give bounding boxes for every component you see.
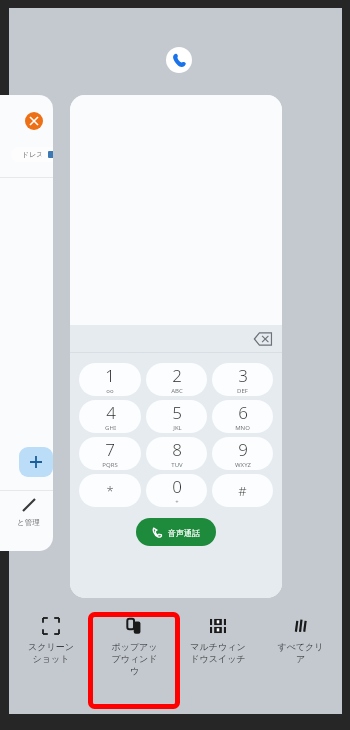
staticText: 7 xyxy=(105,438,115,461)
button[interactable]: 音声通話 xyxy=(136,518,216,546)
button[interactable]: 7 xyxy=(79,437,141,470)
staticText: DEF xyxy=(237,387,248,395)
button[interactable]: Clear all xyxy=(259,606,342,714)
staticText: JKL xyxy=(173,424,182,432)
button[interactable]: Popup window xyxy=(93,606,176,714)
button[interactable]: # xyxy=(212,474,273,507)
button[interactable]: 9 xyxy=(212,437,273,470)
staticText: ドレス xyxy=(22,150,44,159)
staticText: 4 xyxy=(106,401,116,424)
staticText: ポップアッ プウィンド ウ xyxy=(111,641,158,677)
button[interactable]: ドレス xyxy=(0,95,53,551)
staticText: 3 xyxy=(238,364,248,387)
staticText: 9 xyxy=(238,438,248,461)
button[interactable]: 0 xyxy=(146,474,207,507)
button[interactable]: 6 xyxy=(212,400,273,433)
staticText: 0 xyxy=(172,475,182,498)
staticText: 6 xyxy=(238,401,248,424)
staticText: oo xyxy=(106,387,114,395)
button[interactable]: 4 xyxy=(79,400,141,433)
staticText: 音声通話 xyxy=(168,528,200,538)
staticText: TUV xyxy=(171,461,183,469)
button[interactable]: 1 xyxy=(79,363,141,396)
button[interactable]: Backspace xyxy=(70,95,282,598)
staticText: 2 xyxy=(172,364,182,387)
staticText: # xyxy=(238,482,247,500)
staticText: と管理 xyxy=(17,518,40,527)
staticText: ABC xyxy=(171,387,183,395)
staticText: WXYZ xyxy=(235,461,251,469)
button[interactable]: Screenshot xyxy=(9,606,93,714)
button[interactable]: 3 xyxy=(212,363,273,396)
staticText: + xyxy=(175,498,179,506)
staticText: マルチウィン ドウスイッチ xyxy=(190,641,246,665)
button[interactable]: 2 xyxy=(146,363,207,396)
button[interactable]: 5 xyxy=(146,400,207,433)
staticText: スクリーン ショット xyxy=(28,641,74,665)
staticText: 1 xyxy=(105,364,115,387)
button[interactable]: Backspace xyxy=(254,332,272,346)
staticText: 8 xyxy=(172,438,182,461)
button[interactable]: Multi-window switch xyxy=(176,606,259,714)
button[interactable]: Phone app xyxy=(166,47,192,73)
staticText: すべてクリ ア xyxy=(277,641,324,665)
button[interactable]: * xyxy=(79,474,141,507)
staticText: * xyxy=(106,482,114,500)
button[interactable] xyxy=(19,447,53,477)
button[interactable]: 8 xyxy=(146,437,207,470)
staticText: PQRS xyxy=(102,461,118,469)
staticText: 5 xyxy=(172,401,182,424)
staticText: MNO xyxy=(235,424,250,432)
staticText: GHI xyxy=(105,424,116,432)
